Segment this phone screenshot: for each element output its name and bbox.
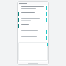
button[interactable]: Content area <box>18 42 48 61</box>
button[interactable] <box>18 36 48 40</box>
button[interactable]: Header <box>17 1 49 5</box>
button[interactable] <box>18 12 48 16</box>
button[interactable] <box>18 6 48 10</box>
button[interactable] <box>18 24 48 28</box>
button[interactable]: Bottom bar <box>17 62 49 65</box>
button[interactable] <box>18 30 48 34</box>
button[interactable] <box>18 18 48 22</box>
